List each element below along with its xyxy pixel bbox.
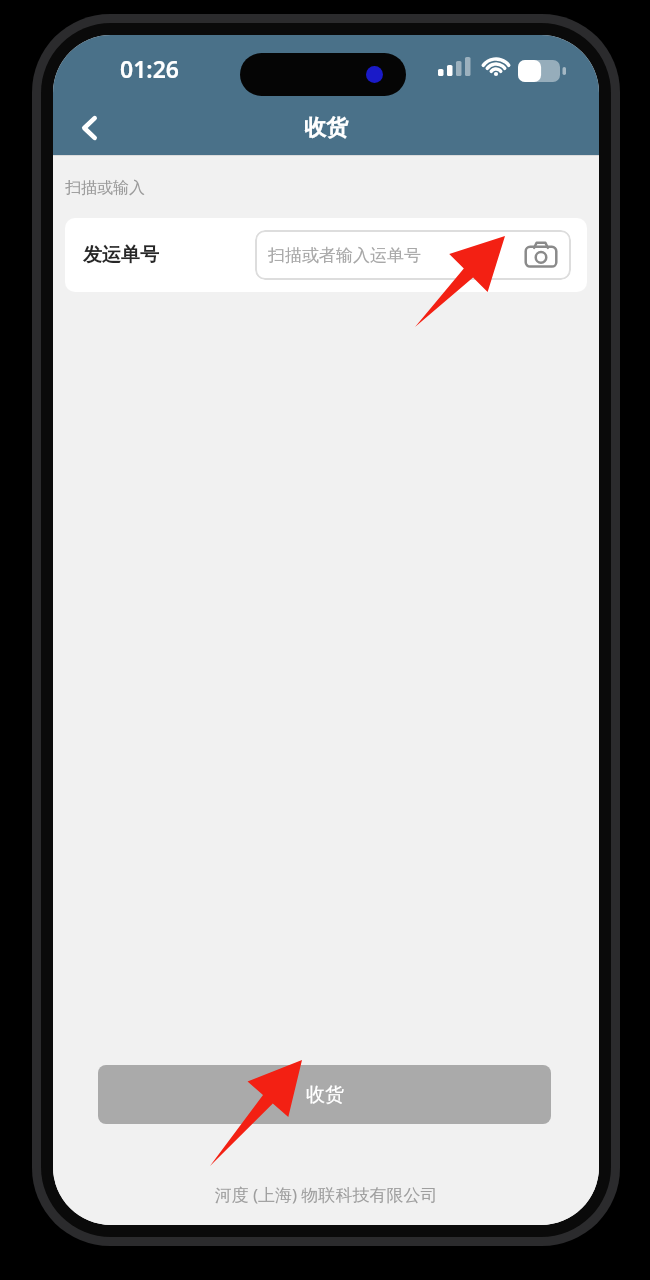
staticText: 收货 — [304, 114, 348, 142]
button[interactable]: 扫描或者输入运单号 — [255, 230, 571, 280]
staticText: 40 — [524, 59, 542, 79]
button[interactable]: Scan with camera — [519, 233, 563, 277]
button[interactable]: 收货 — [98, 1065, 551, 1124]
staticText: 收货 — [306, 1083, 344, 1107]
staticText: 河度 (上海) 物联科技有限公司 — [53, 1183, 599, 1206]
staticText: 01:26 — [120, 53, 179, 84]
staticText: 发运单号 — [83, 243, 159, 267]
button[interactable]: 发运单号 — [65, 218, 587, 292]
staticText: 扫描或输入 — [65, 178, 145, 198]
staticText: 扫描或者输入运单号 — [268, 245, 421, 266]
button[interactable]: Back — [63, 101, 117, 155]
